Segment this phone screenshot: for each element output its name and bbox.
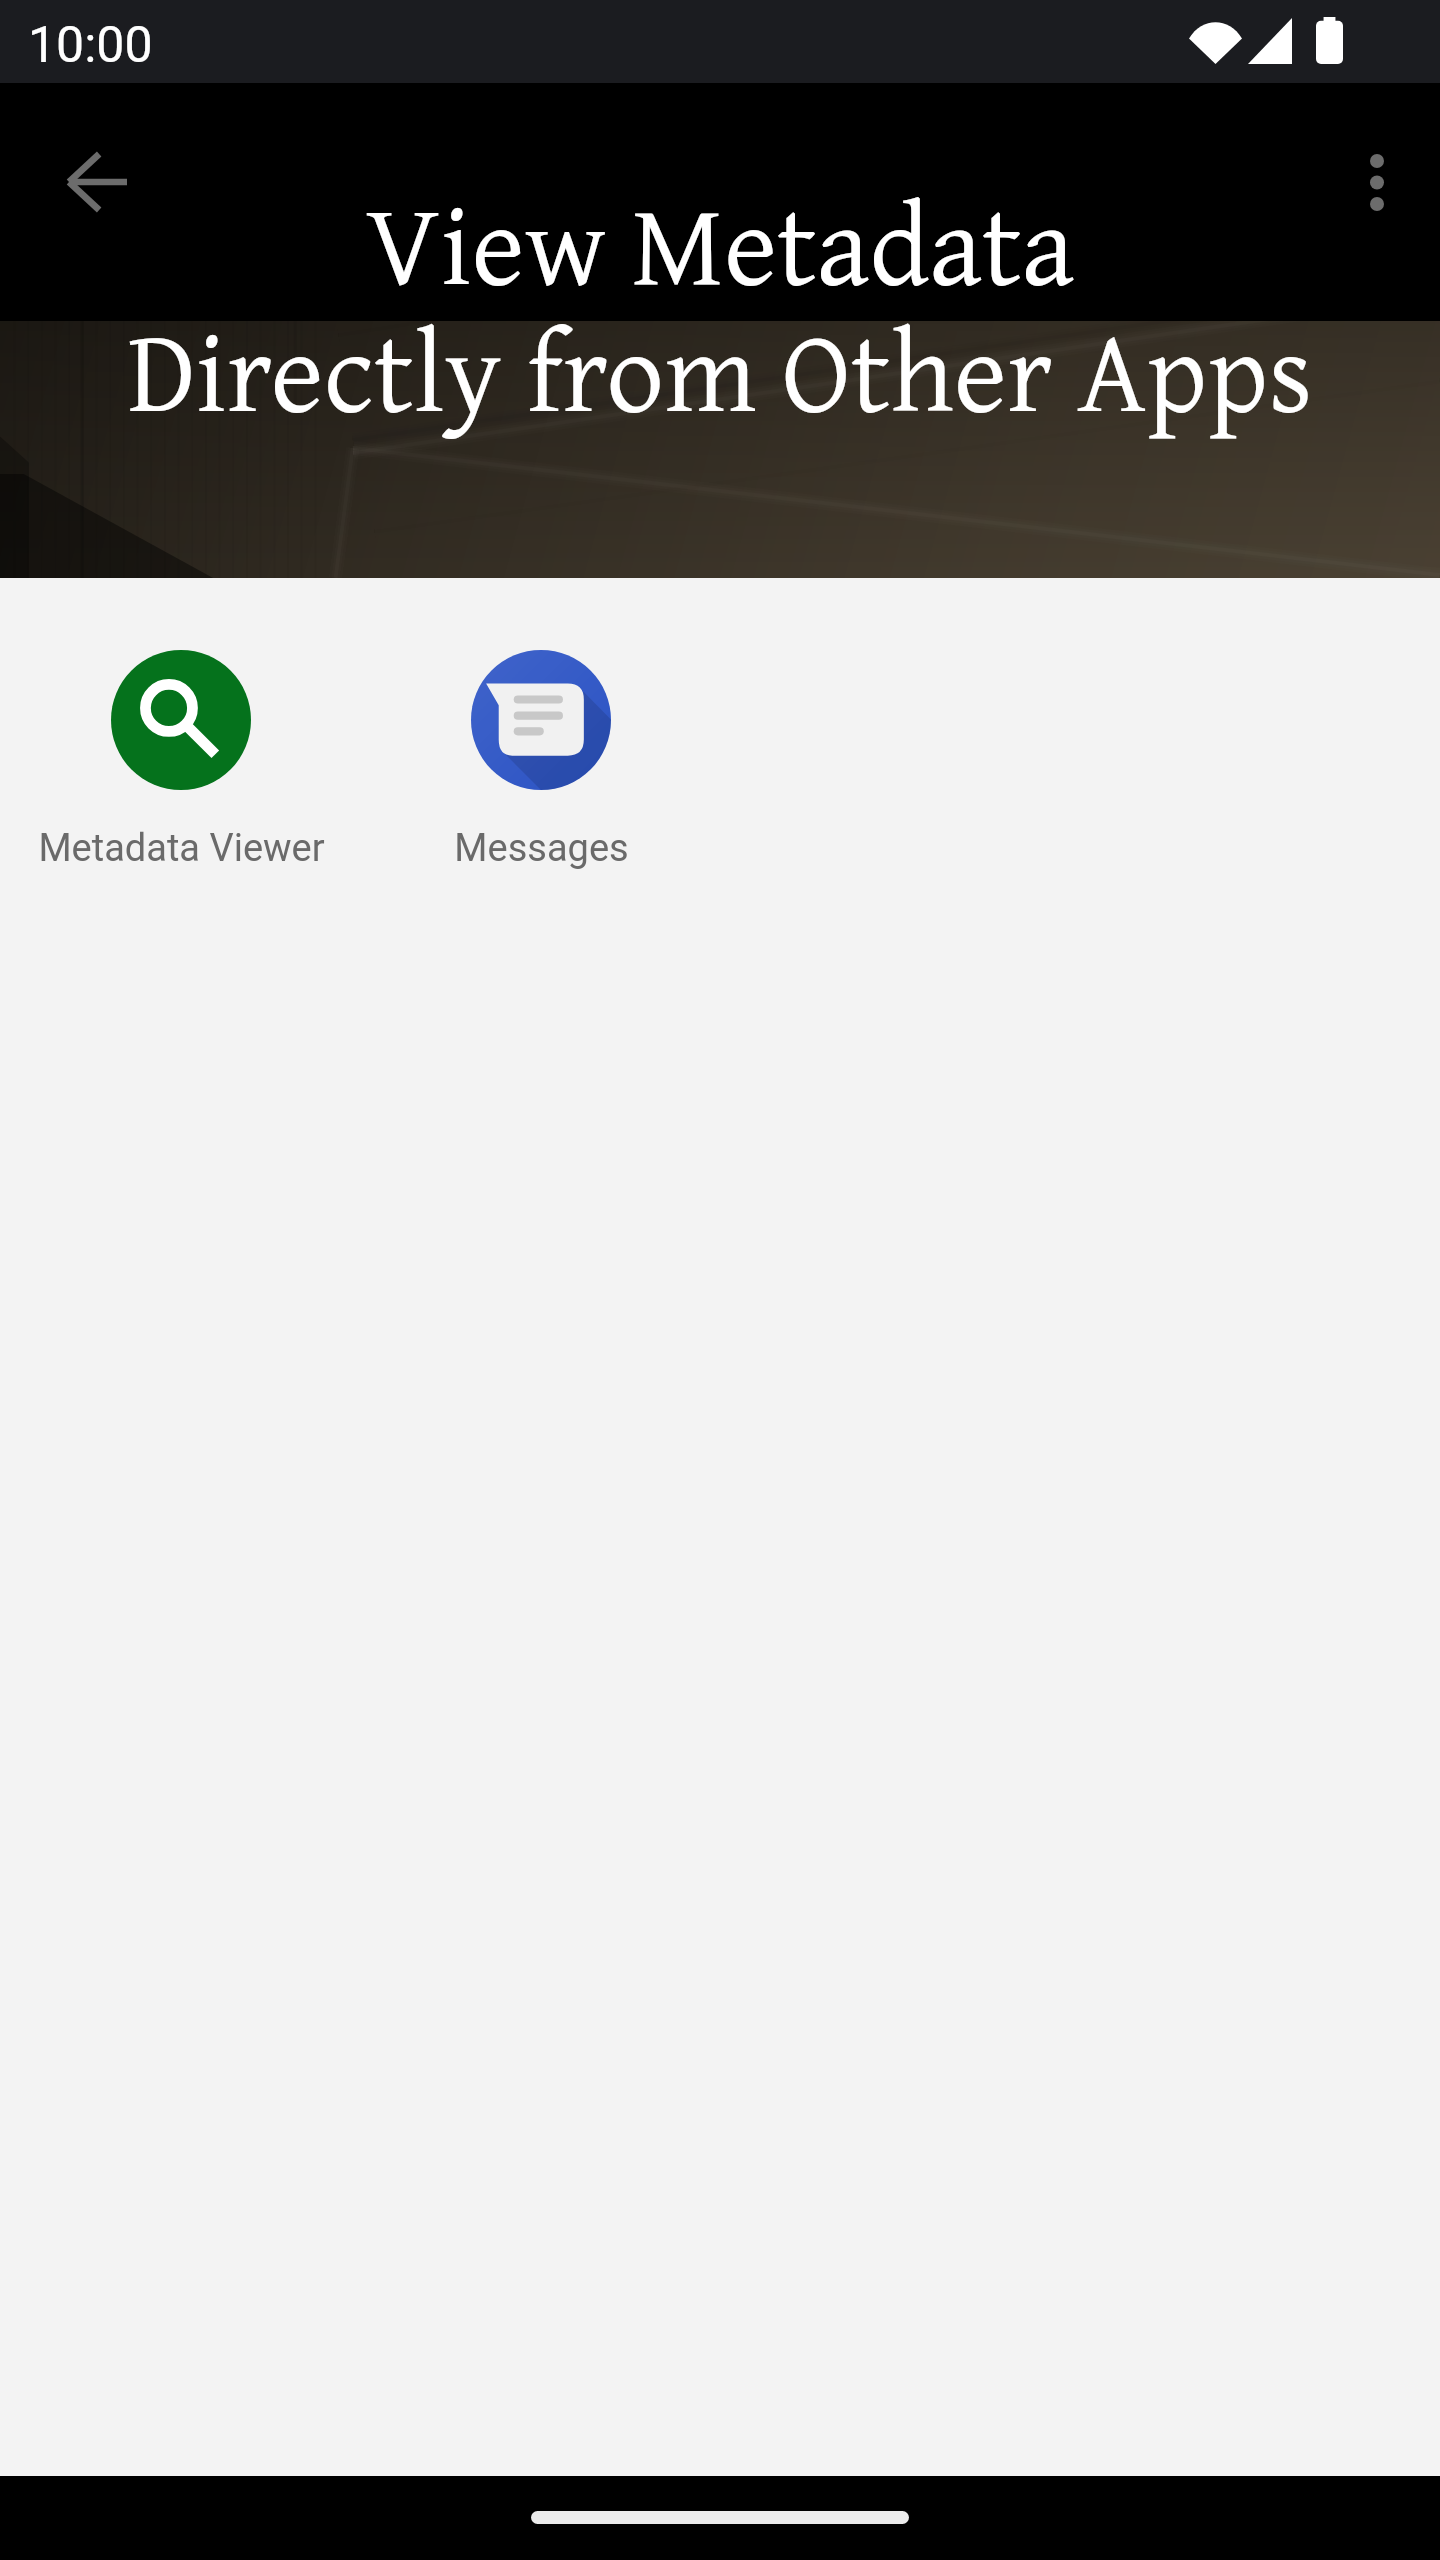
staticText: Metadata Viewer bbox=[38, 826, 325, 871]
button[interactable]: More options bbox=[1305, 110, 1440, 254]
staticText: View Metadata Directly from Other Apps bbox=[0, 158, 1440, 453]
staticText: Messages bbox=[454, 826, 629, 871]
button[interactable]: Metadata Viewer bbox=[1, 644, 361, 885]
button[interactable]: Messages bbox=[361, 644, 721, 885]
staticText: 10:00 bbox=[28, 16, 153, 75]
button[interactable]: Navigate up bbox=[26, 110, 170, 254]
